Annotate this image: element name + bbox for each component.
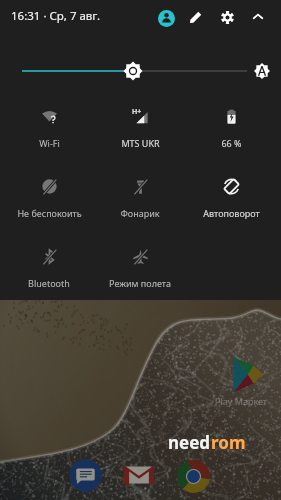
button[interactable]: Edit xyxy=(184,5,208,29)
staticText: Play Маркет xyxy=(215,395,268,407)
button[interactable]: H+ xyxy=(95,108,185,154)
button[interactable]: Settings xyxy=(215,5,239,29)
button[interactable]: Play Store xyxy=(228,353,268,393)
staticText: 66 % xyxy=(221,137,242,149)
staticText: Не беспокоить xyxy=(17,207,82,219)
button[interactable]: Messages xyxy=(69,459,102,492)
button[interactable]: Фонарик xyxy=(95,178,185,224)
button[interactable]: Account xyxy=(154,6,178,30)
staticText: rom xyxy=(211,431,246,454)
button[interactable]: Режим полета xyxy=(95,248,185,294)
button[interactable]: Не беспокоить xyxy=(4,178,94,224)
button[interactable]: Chrome xyxy=(176,459,211,494)
button[interactable]: Gmail xyxy=(122,458,156,492)
button[interactable]: Collapse xyxy=(246,5,270,29)
staticText: Bluetooth xyxy=(28,277,70,289)
button[interactable]: Wi-Fi xyxy=(4,108,94,154)
button[interactable]: Auto brightness xyxy=(250,59,274,83)
staticText: Режим полета xyxy=(109,277,171,289)
staticText: Фонарик xyxy=(120,207,160,219)
staticText: need xyxy=(168,431,211,454)
button[interactable]: Bluetooth xyxy=(4,248,94,294)
staticText: H+ xyxy=(132,107,142,117)
staticText: Автоповорот xyxy=(203,207,260,219)
staticText: MTS UKR xyxy=(121,137,160,149)
button[interactable]: 66 % xyxy=(186,108,276,154)
button[interactable]: Автоповорот xyxy=(186,178,276,224)
staticText: 16:31 · Ср, 7 авг. xyxy=(11,8,100,24)
staticText: Wi-Fi xyxy=(39,137,60,149)
